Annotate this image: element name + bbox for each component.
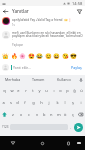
- button[interactable]: ?123: [1, 120, 10, 134]
- button[interactable]: v: [33, 108, 41, 120]
- button[interactable]: q: [0, 84, 8, 96]
- staticText: o: [59, 88, 62, 93]
- button[interactable]: 😊: [44, 52, 52, 60]
- button[interactable]: t: [29, 84, 36, 96]
- button[interactable]: 😂: [35, 52, 43, 60]
- button[interactable]: Paylaş: [70, 63, 83, 72]
- button[interactable]: 🌸: [18, 52, 26, 60]
- button[interactable]: a: [0, 96, 7, 108]
- staticText: 😂: [36, 53, 43, 59]
- staticText: aprilylafatid Yay +Valid Tag a friend: [12, 18, 64, 22]
- button[interactable]: f: [21, 96, 29, 108]
- staticText: Tamam: [32, 77, 45, 82]
- button[interactable]: Back: [0, 6, 10, 16]
- button[interactable]: Backspace: [76, 108, 85, 120]
- staticText: d: [16, 100, 19, 105]
- button[interactable]: s: [7, 96, 14, 108]
- staticText: w: [10, 88, 14, 93]
- staticText: y: [38, 88, 41, 93]
- staticText: 👑: [2, 53, 9, 59]
- button[interactable]: Kullanıcı: [51, 75, 77, 84]
- staticText: ğ: [73, 88, 76, 93]
- staticText: mefi_uzel Bunlarını en sıkı hasandan, el…: [12, 31, 83, 41]
- staticText: v: [36, 112, 39, 117]
- button[interactable]: x: [17, 108, 25, 120]
- button[interactable]: 😘: [61, 52, 69, 60]
- button[interactable]: 😄: [52, 52, 60, 60]
- button[interactable]: y: [36, 84, 43, 96]
- staticText: g: [32, 100, 35, 105]
- staticText: ❗: [68, 18, 72, 22]
- button[interactable]: Shift: [0, 108, 9, 120]
- button[interactable]: u: [43, 84, 50, 96]
- button[interactable]: o: [57, 84, 64, 96]
- staticText: 🌸: [19, 53, 26, 59]
- staticText: f: [24, 100, 26, 105]
- staticText: 🔥: [11, 53, 18, 59]
- staticText: t: [32, 88, 34, 93]
- staticText: Kullanıcı: [57, 77, 72, 82]
- staticText: ç: [72, 112, 74, 117]
- button[interactable]: p: [64, 84, 71, 96]
- staticText: l: [64, 100, 66, 105]
- button[interactable]: b: [41, 108, 48, 120]
- staticText: p: [66, 88, 69, 93]
- button[interactable]: h: [37, 96, 45, 108]
- button[interactable]: ğ: [71, 84, 78, 96]
- button[interactable]: mefi_uzel Bunlarını en sıkı hasandan, el…: [0, 31, 85, 47]
- button[interactable]: Hide keyboard: [74, 138, 84, 148]
- button[interactable]: Voice input: [77, 75, 85, 84]
- button[interactable]: k: [53, 96, 61, 108]
- staticText: i: [80, 100, 82, 105]
- button[interactable]: Merhaba: [0, 75, 25, 84]
- button[interactable]: e: [15, 84, 22, 96]
- staticText: q: [3, 88, 6, 93]
- staticText: 14:58: [72, 1, 83, 6]
- button[interactable]: ü: [78, 84, 85, 96]
- button[interactable]: g: [29, 96, 37, 108]
- button[interactable]: Recents: [63, 138, 73, 148]
- button[interactable]: ç: [69, 108, 76, 120]
- button[interactable]: r: [22, 84, 29, 96]
- staticText: ı: [53, 88, 55, 93]
- button[interactable]: j: [45, 96, 53, 108]
- staticText: r: [25, 88, 27, 93]
- staticText: n: [50, 112, 53, 117]
- button[interactable]: c: [25, 108, 33, 120]
- staticText: Yanıtlar: [12, 8, 29, 14]
- button[interactable]: Home: [37, 138, 47, 148]
- button[interactable]: 😍: [27, 52, 35, 60]
- button[interactable]: 👑: [1, 52, 9, 60]
- button[interactable]: ö: [62, 108, 69, 120]
- button[interactable]: w: [8, 84, 15, 96]
- button[interactable]: z: [9, 108, 17, 120]
- button[interactable]: 😎: [69, 52, 77, 60]
- staticText: u: [45, 88, 48, 93]
- button[interactable]: Back: [8, 138, 18, 148]
- button[interactable]: l: [61, 96, 69, 108]
- button[interactable]: ı: [50, 84, 57, 96]
- button[interactable]: n: [48, 108, 55, 120]
- staticText: 1s: [12, 23, 15, 27]
- staticText: 😘: [62, 53, 69, 59]
- staticText: z: [12, 112, 14, 117]
- button[interactable]: ş: [69, 96, 77, 108]
- button[interactable]: m: [55, 108, 62, 120]
- staticText: ö: [64, 112, 67, 117]
- staticText: h: [40, 100, 43, 105]
- staticText: k: [56, 100, 59, 105]
- button[interactable]: i: [77, 96, 85, 108]
- button[interactable]: aprilylafatid Yay +Valid Tag a friend: [0, 16, 85, 27]
- button[interactable]: Tamam: [25, 75, 51, 84]
- button[interactable]: Send: [74, 123, 83, 132]
- staticText: s: [10, 100, 12, 105]
- staticText: j: [48, 100, 50, 105]
- staticText: e: [17, 88, 20, 93]
- staticText: 😊: [45, 53, 52, 59]
- button[interactable]: Filter: [74, 6, 84, 16]
- button[interactable]: d: [14, 96, 21, 108]
- staticText: 😄: [53, 53, 60, 59]
- button[interactable]: 🔥: [10, 52, 18, 60]
